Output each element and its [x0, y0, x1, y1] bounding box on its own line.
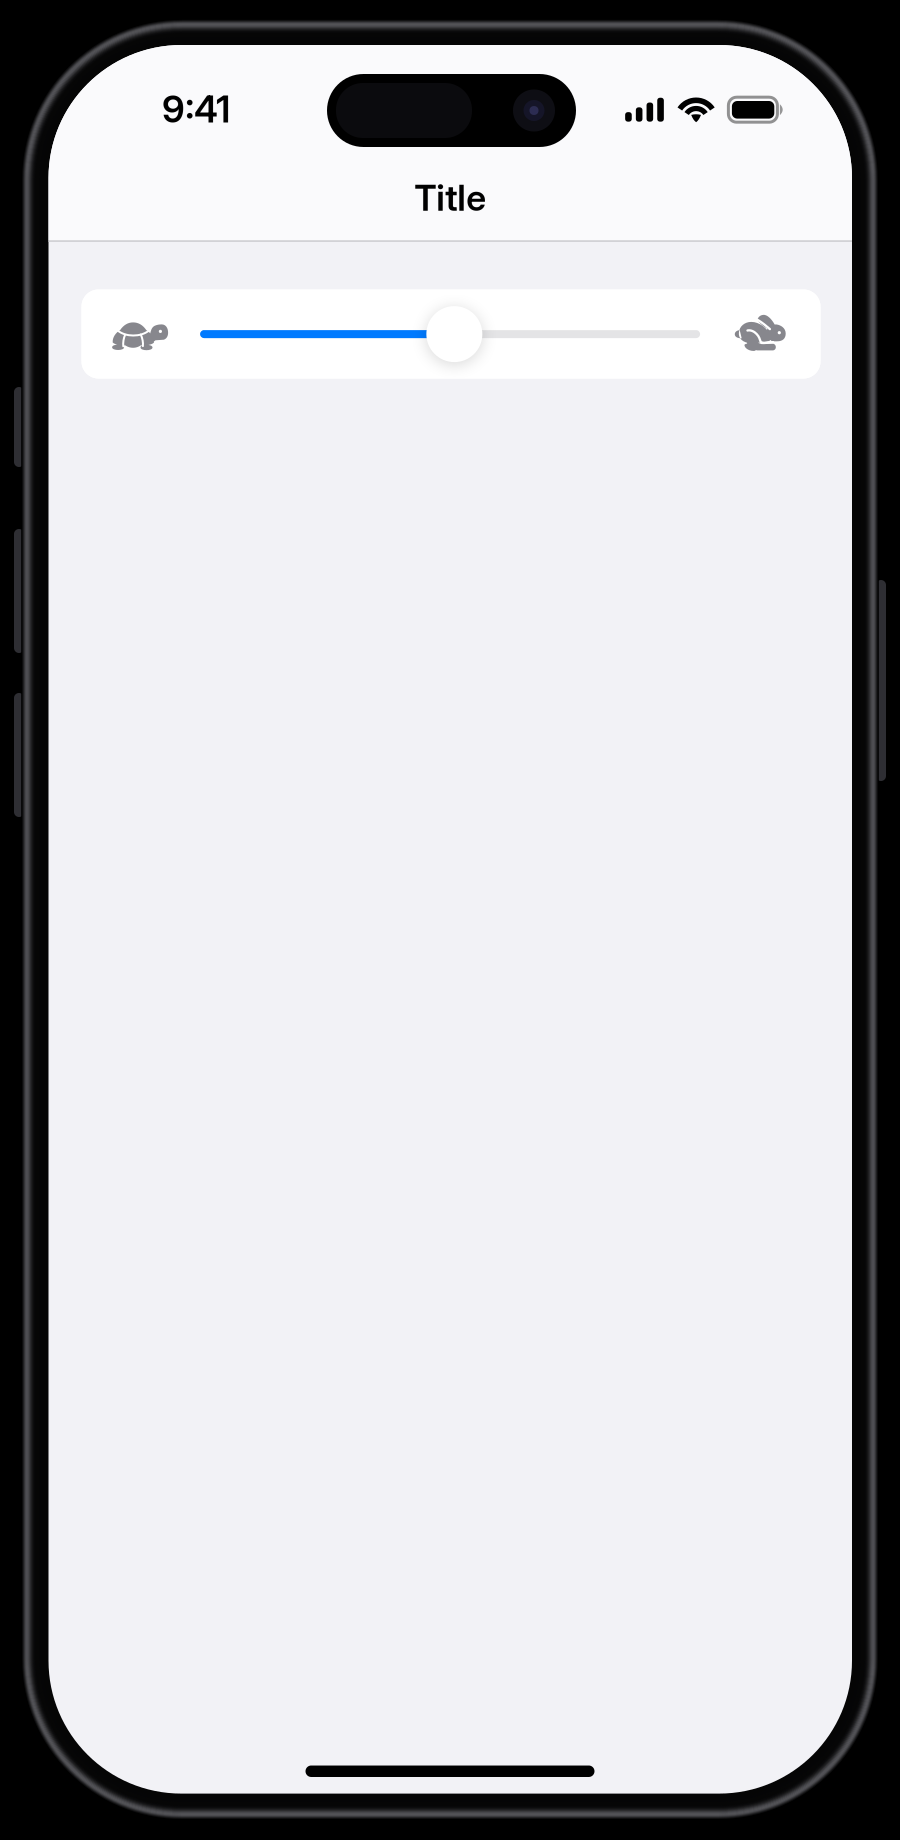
cell[interactable]: [81, 289, 820, 378]
button[interactable]: Speed: [81, 289, 820, 378]
navigationBar: Title: [48, 176, 852, 220]
staticText: 9:41: [162, 87, 230, 131]
staticText: Title: [414, 177, 486, 219]
